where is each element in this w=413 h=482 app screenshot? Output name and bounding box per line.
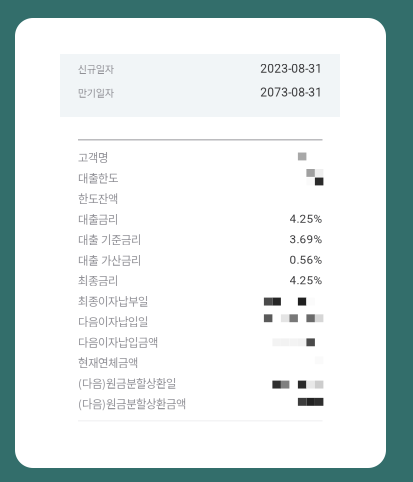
staticText: 0.56%	[289, 253, 322, 267]
staticText: 최종금리	[78, 272, 118, 288]
staticText: (다음)원금분할상환일	[78, 375, 176, 391]
staticText: 3.69%	[289, 232, 322, 246]
staticText: 2073-08-31	[260, 85, 322, 99]
staticText: 4.25%	[289, 212, 322, 226]
staticText: 신규일자	[78, 61, 114, 76]
staticText: (다음)원금분할상환금액	[78, 395, 186, 412]
staticText: 한도잔액	[78, 190, 118, 206]
staticText: 다음이자납입금액	[78, 334, 158, 350]
staticText: 2023-08-31	[260, 62, 322, 76]
staticText: 대출 기준금리	[78, 231, 141, 247]
staticText: 최종이자납부일	[78, 293, 148, 309]
staticText: 4.25%	[289, 273, 322, 287]
staticText: 현재연체금액	[78, 354, 138, 371]
staticText: 대출 가산금리	[78, 252, 141, 268]
staticText: 대출한도	[78, 169, 118, 186]
staticText: 고객명	[78, 149, 108, 165]
staticText: 만기일자	[78, 85, 114, 100]
staticText: 다음이자납입일	[78, 313, 148, 329]
staticText: 대출금리	[78, 210, 118, 227]
